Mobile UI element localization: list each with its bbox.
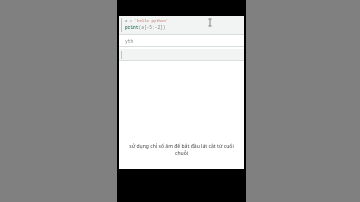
staticText: print(a[-5:-2]): [125, 24, 166, 30]
staticText: a = 'hello python': [125, 18, 169, 23]
other: Text cursor: [208, 19, 212, 26]
button[interactable]: a = 'hello python': [119, 16, 244, 34]
staticText: yth: [125, 38, 134, 44]
staticText: sử dụng chỉ số âm để bắt đầu lát cắt từ …: [127, 143, 236, 157]
button[interactable]: [119, 49, 244, 60]
